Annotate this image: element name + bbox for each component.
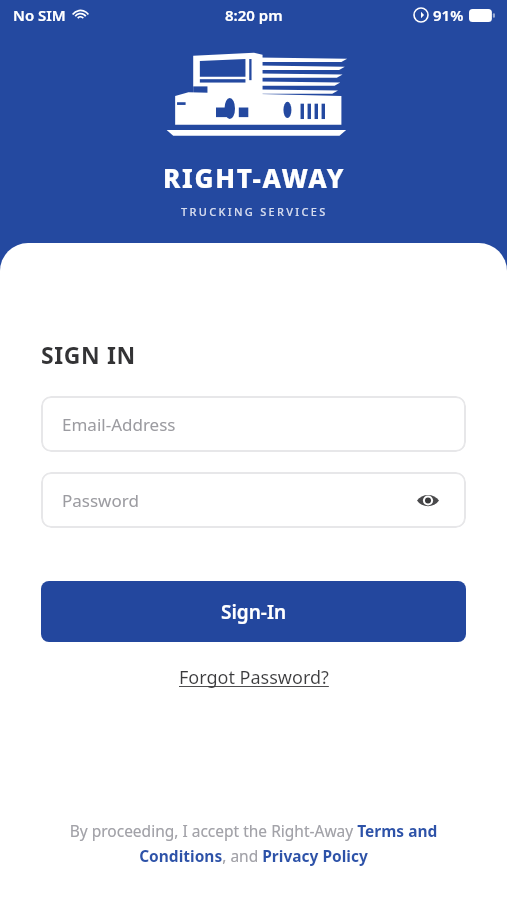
button[interactable]: By proceeding, I accept the Right-Away T…: [26, 820, 481, 866]
button[interactable]: Show password: [411, 483, 445, 517]
staticText: 8:20 pm: [225, 5, 283, 25]
button[interactable]: Email-Address: [41, 396, 466, 452]
staticText: Password: [62, 489, 139, 512]
staticText: SIGN IN: [41, 339, 136, 370]
staticText: TRUCKING SERVICES: [181, 204, 328, 219]
staticText: Forgot Password?: [179, 665, 329, 690]
staticText: RIGHT-AWAY: [163, 160, 346, 195]
staticText: Email-Address: [62, 413, 176, 436]
staticText: By proceeding, I accept the Right-Away T…: [26, 820, 481, 866]
button[interactable]: Sign-In: [41, 581, 466, 642]
staticText: Sign-In: [221, 599, 287, 625]
staticText: 91%: [433, 5, 464, 25]
button[interactable]: Forgot Password?: [169, 660, 339, 695]
button[interactable]: Password: [41, 472, 466, 528]
staticText: No SIM: [13, 5, 66, 25]
